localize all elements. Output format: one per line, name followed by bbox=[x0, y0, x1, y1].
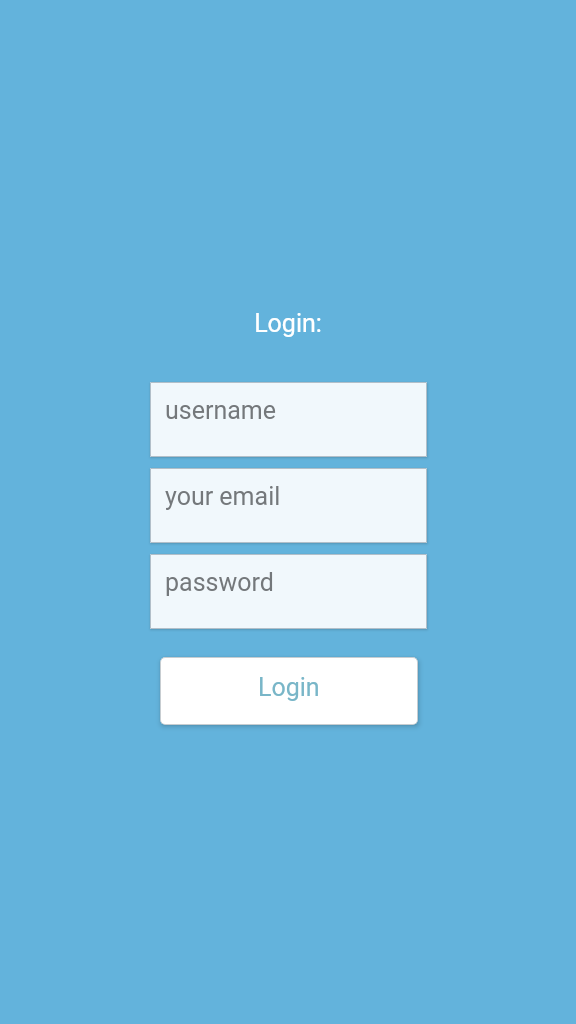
button[interactable]: Login bbox=[160, 657, 418, 725]
button[interactable]: your email bbox=[150, 468, 427, 543]
staticText: Login bbox=[258, 673, 320, 702]
staticText: your email bbox=[165, 482, 281, 511]
button[interactable]: username bbox=[150, 382, 427, 457]
staticText: username bbox=[165, 396, 276, 425]
staticText: password bbox=[165, 568, 274, 597]
staticText: Login: bbox=[254, 309, 322, 338]
button[interactable]: password bbox=[150, 554, 427, 629]
